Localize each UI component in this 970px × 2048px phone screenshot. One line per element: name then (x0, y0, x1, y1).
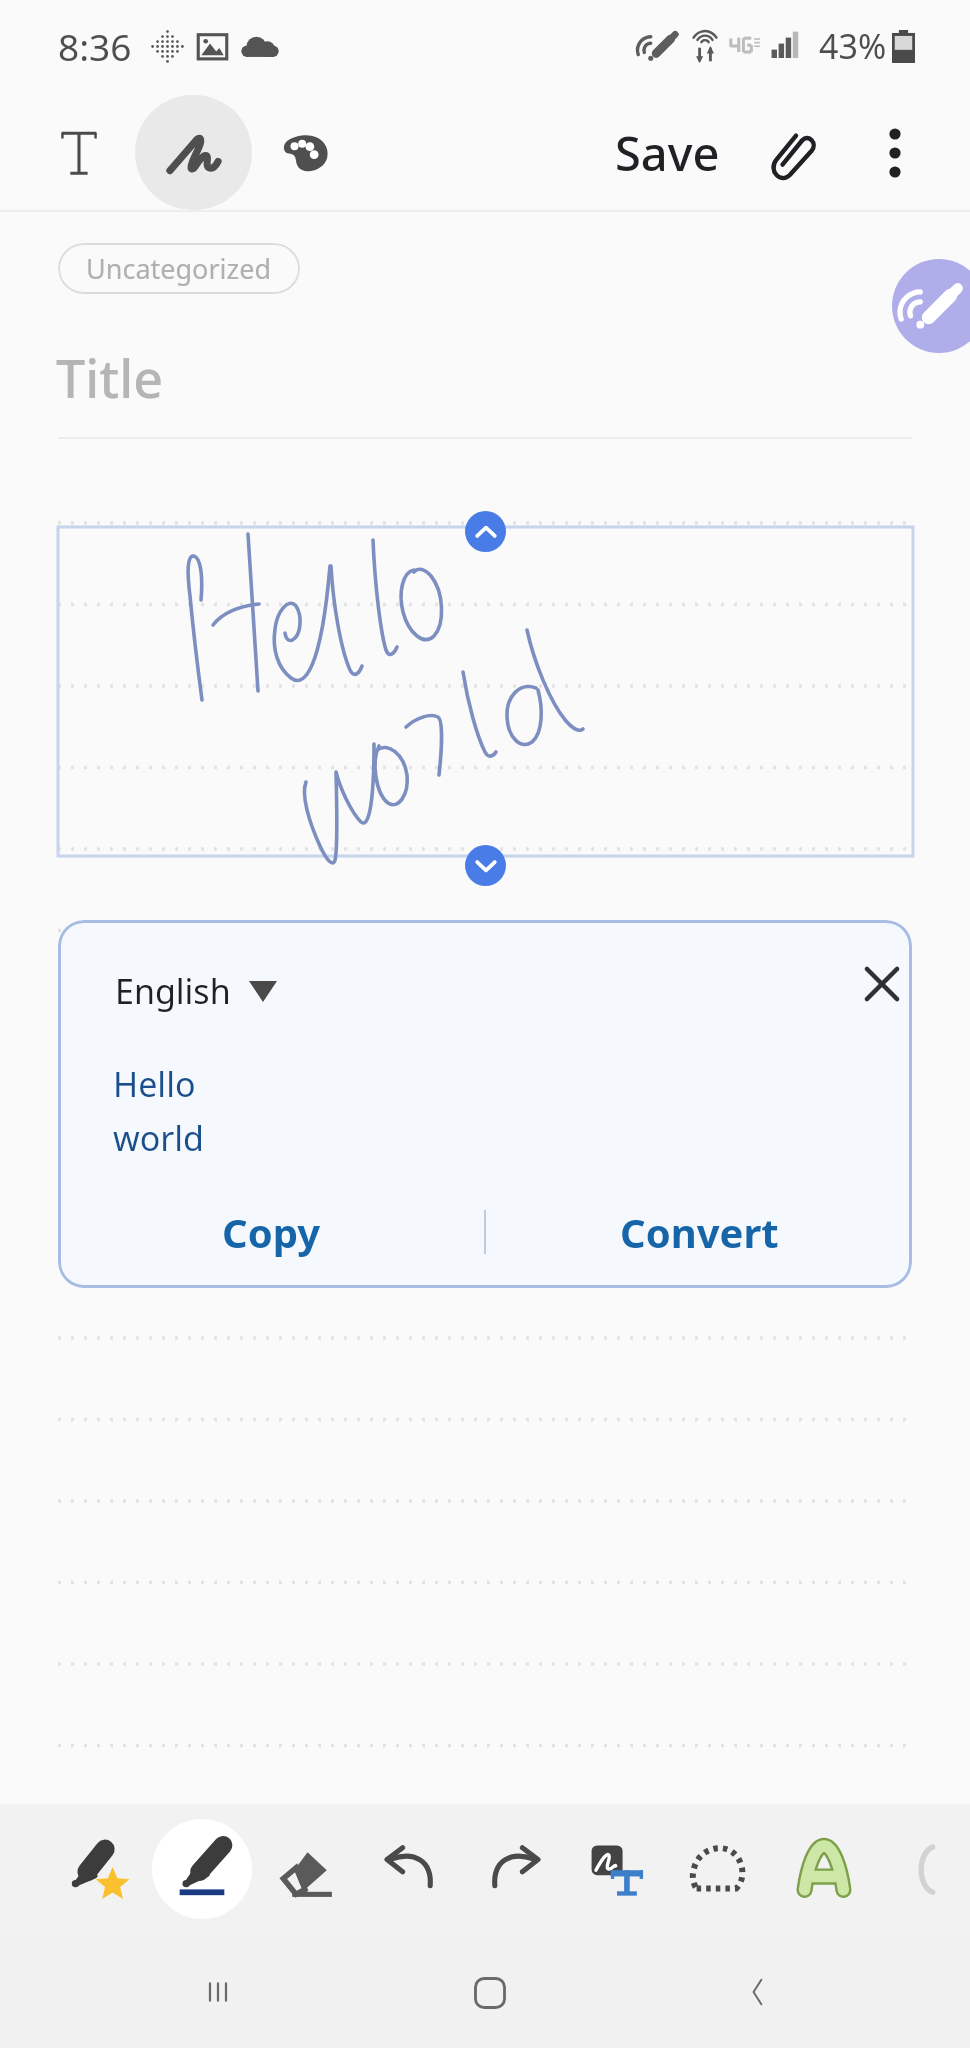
button[interactable]: S Pen actions (892, 259, 970, 353)
staticText: Title (56, 342, 164, 413)
button[interactable]: Convert (486, 1176, 912, 1288)
button[interactable]: Move selection down (465, 845, 506, 886)
button[interactable]: Eraser (255, 1819, 355, 1919)
staticText: English (115, 968, 231, 1014)
button[interactable]: Handwriting mode (135, 95, 252, 210)
staticText: 8:36 (58, 21, 132, 71)
staticText: Save (615, 121, 720, 185)
staticText: Hello (113, 1061, 196, 1107)
staticText: world (113, 1115, 205, 1161)
button[interactable]: Drawing palette (268, 115, 344, 191)
button[interactable]: Recents (163, 1935, 273, 2048)
button[interactable]: Attach (760, 118, 830, 188)
button[interactable]: Close (852, 954, 912, 1014)
button[interactable]: Undo (361, 1819, 461, 1919)
button[interactable]: Home (435, 1935, 545, 2048)
button[interactable]: Text mode (41, 115, 117, 191)
staticText: Convert (620, 1205, 779, 1259)
button[interactable]: Copy (58, 1176, 484, 1288)
button[interactable]: Pen (152, 1819, 252, 1919)
button[interactable]: More tools (880, 1819, 970, 1919)
button[interactable]: Auto shape recognition (774, 1819, 874, 1919)
button[interactable]: Convert handwriting to text (567, 1819, 667, 1919)
button[interactable]: Favourite pen (49, 1819, 149, 1919)
button[interactable]: Redo (464, 1819, 564, 1919)
button[interactable]: Lasso select (667, 1819, 767, 1919)
staticText: Copy (222, 1205, 320, 1259)
staticText: 43% (819, 23, 887, 69)
button[interactable]: Uncategorized (58, 243, 300, 294)
staticText: Uncategorized (86, 250, 272, 287)
button[interactable]: Save (607, 113, 728, 193)
button[interactable]: English (111, 964, 281, 1018)
button[interactable]: More options (864, 122, 926, 184)
button[interactable]: Move selection up (465, 511, 506, 552)
button[interactable]: Back (703, 1935, 813, 2048)
